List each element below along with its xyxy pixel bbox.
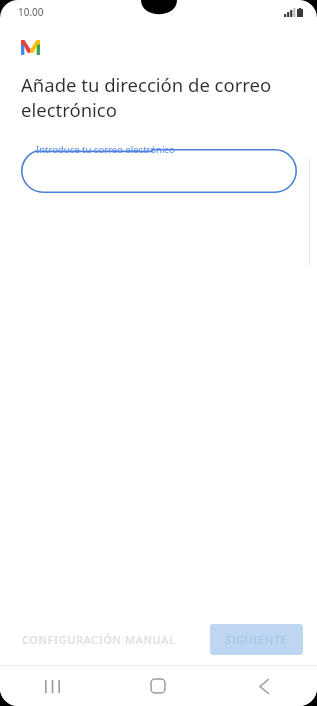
button[interactable]: SIGUIENTE	[210, 624, 303, 655]
button[interactable]: Recents	[0, 666, 105, 706]
staticText: SIGUIENTE	[225, 632, 288, 647]
button[interactable]: Introduce tu correo electrónico	[21, 141, 297, 193]
staticText: Introduce tu correo electrónico	[36, 143, 175, 156]
button[interactable]: CONFIGURACIÓN MANUAL	[14, 624, 184, 655]
staticText: CONFIGURACIÓN MANUAL	[22, 632, 176, 647]
button[interactable]: Home	[105, 666, 211, 706]
button[interactable]: Back	[211, 666, 317, 706]
staticText: Añade tu dirección de correo electrónico	[21, 72, 297, 122]
staticText: 10.00	[18, 5, 44, 19]
